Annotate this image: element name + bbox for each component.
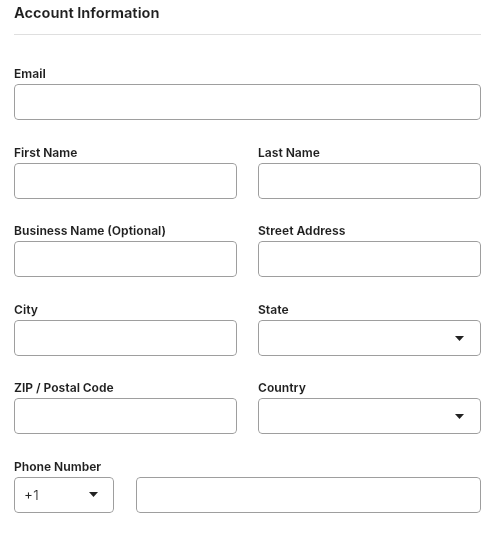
button[interactable]: First Name [14, 163, 237, 199]
staticText: Account Information [14, 4, 160, 22]
button[interactable]: Street Address [258, 241, 481, 277]
button[interactable]: Select Country [258, 398, 481, 434]
staticText: City [14, 302, 39, 317]
staticText: Street Address [258, 223, 346, 238]
button[interactable]: Select Phone Number [14, 477, 114, 513]
button[interactable]: Last Name [258, 163, 481, 199]
button[interactable]: Select State [258, 320, 481, 356]
button[interactable]: City [14, 320, 237, 356]
staticText: First Name [14, 145, 78, 160]
staticText: State [258, 302, 289, 317]
staticText: Phone Number [14, 459, 102, 474]
button[interactable]: Email [14, 84, 481, 120]
staticText: Last Name [258, 145, 320, 160]
staticText: Business Name (Optional) [14, 223, 167, 238]
button[interactable]: Business Name (Optional) [14, 241, 237, 277]
staticText: +1 [24, 487, 40, 503]
staticText: Email [14, 66, 46, 81]
button[interactable]: Phone number [136, 477, 481, 513]
staticText: ZIP / Postal Code [14, 380, 114, 395]
staticText: Country [258, 380, 306, 395]
button[interactable]: ZIP / Postal Code [14, 398, 237, 434]
